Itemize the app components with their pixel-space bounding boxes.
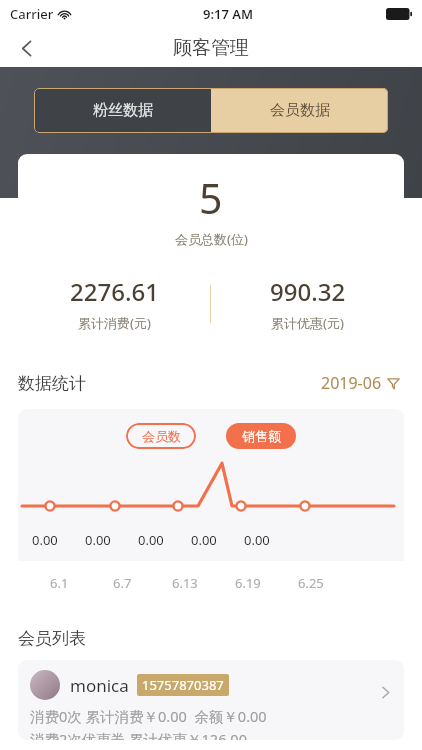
button[interactable]: Back — [10, 31, 44, 65]
staticText: 消费2次优惠券 累计优惠￥126.00 — [30, 729, 247, 740]
staticText: 销售额 — [242, 428, 281, 444]
staticText: 消费0次 累计消费￥0.00 余额￥0.00 — [30, 706, 267, 726]
staticText: 2276.61 — [70, 275, 159, 308]
staticText: 顾客管理 — [173, 36, 249, 60]
staticText: 会员总数(位) — [175, 230, 248, 248]
staticText: 6.19 — [235, 574, 261, 592]
button[interactable]: 粉丝数据 — [34, 88, 211, 133]
staticText: 0.00 — [138, 531, 164, 549]
staticText: 15757870387 — [142, 676, 224, 694]
staticText: 5 — [199, 170, 223, 226]
staticText: 会员数据 — [270, 101, 330, 120]
button[interactable]: 销售额 — [226, 423, 296, 449]
staticText: 会员列表 — [18, 628, 86, 649]
staticText: 累计优惠(元) — [271, 314, 344, 332]
staticText: 会员数 — [142, 428, 181, 444]
staticText: 990.32 — [270, 275, 346, 308]
button[interactable]: monica — [18, 660, 404, 740]
staticText: 累计消费(元) — [78, 314, 151, 332]
staticText: 粉丝数据 — [93, 101, 153, 120]
staticText: 6.1 — [50, 574, 69, 592]
staticText: 9:17 AM — [203, 5, 254, 23]
staticText: 0.00 — [244, 531, 270, 549]
staticText: 0.00 — [32, 531, 58, 549]
button[interactable]: 会员数据 — [211, 88, 388, 133]
staticText: 2019-06 — [321, 372, 382, 394]
button[interactable]: 2019-06 — [317, 368, 404, 398]
staticText: 0.00 — [85, 531, 111, 549]
button[interactable]: 会员数 — [126, 423, 196, 449]
staticText: 0.00 — [191, 531, 217, 549]
staticText: 6.7 — [113, 574, 132, 592]
staticText: Carrier — [10, 5, 54, 23]
staticText: 数据统计 — [18, 373, 86, 394]
staticText: monica — [70, 674, 129, 697]
staticText: 6.25 — [298, 574, 324, 592]
staticText: 6.13 — [172, 574, 198, 592]
